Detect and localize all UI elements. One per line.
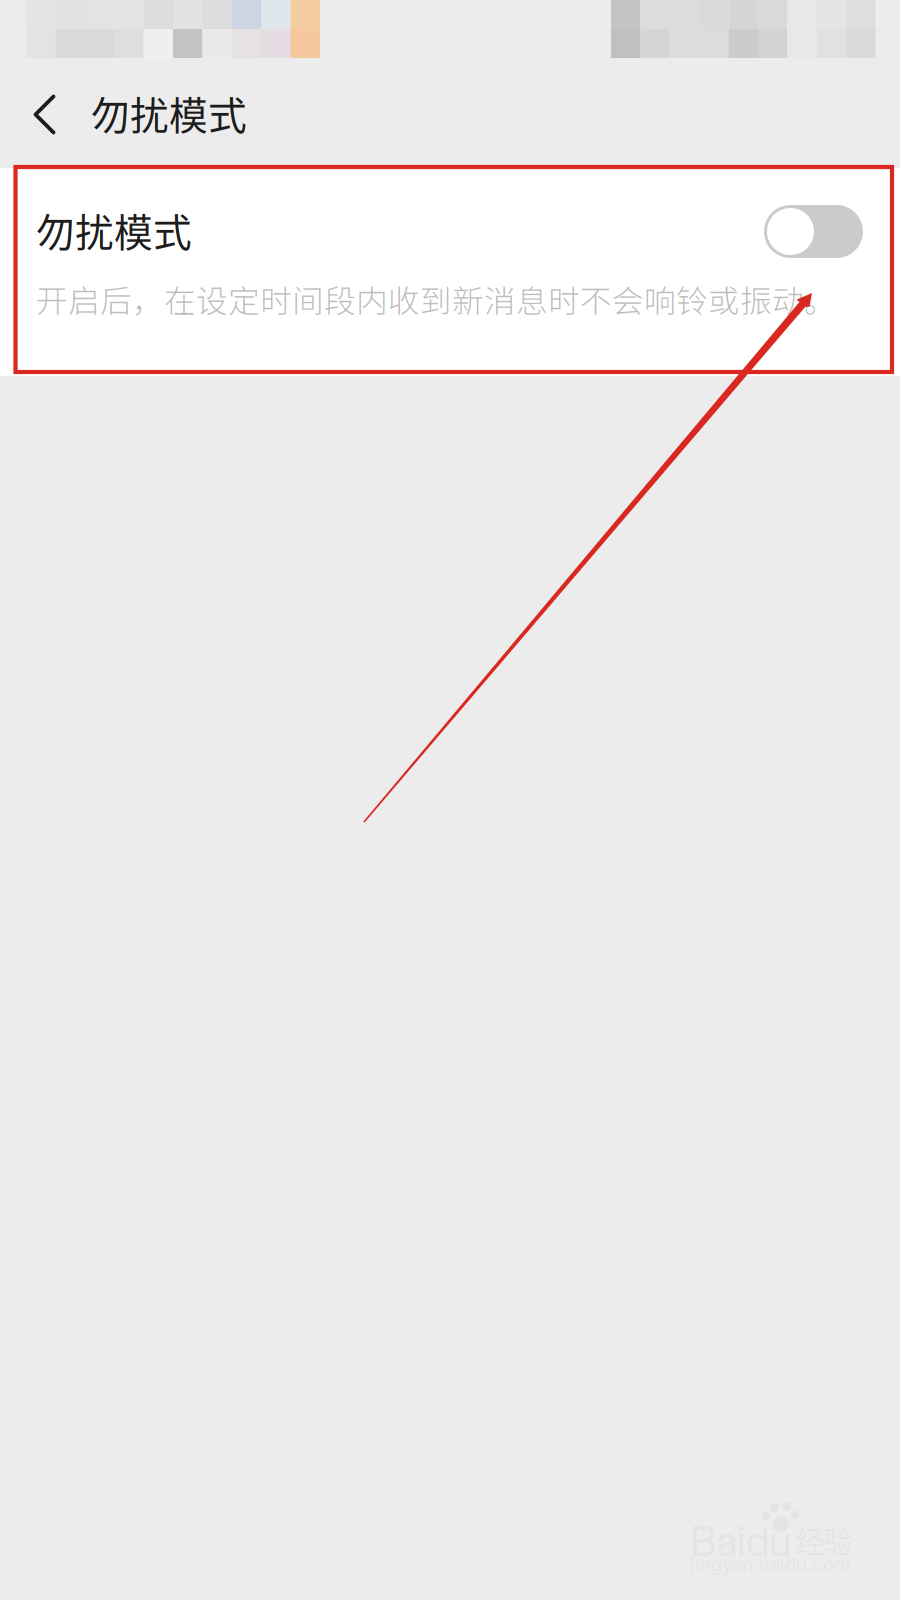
staticText: 开启后，在设定时间段内收到新消息时不会响铃或振动。 bbox=[36, 276, 836, 322]
staticText: 勿扰模式 bbox=[36, 202, 192, 258]
button[interactable]: 勿扰模式 bbox=[0, 168, 900, 376]
staticText: 勿扰模式 bbox=[91, 85, 247, 141]
staticText: 经验 bbox=[795, 1519, 853, 1561]
button[interactable]: 返回 bbox=[0, 60, 78, 148]
button[interactable]: 勿扰模式开关 bbox=[764, 205, 863, 258]
staticText: Baidu bbox=[690, 1516, 792, 1566]
